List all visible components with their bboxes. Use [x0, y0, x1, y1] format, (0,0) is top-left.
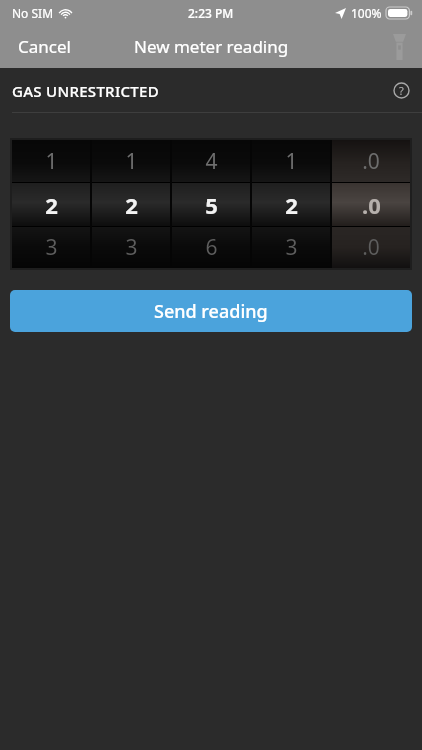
staticText: .0	[362, 190, 381, 220]
staticText: Send reading	[154, 299, 268, 324]
button[interactable]: Send reading	[10, 290, 412, 332]
button[interactable]: Cancel	[0, 27, 89, 66]
button[interactable]: 1	[12, 140, 90, 268]
staticText: 6	[205, 233, 218, 262]
staticText: 3	[285, 233, 298, 262]
staticText: 5	[205, 190, 218, 220]
staticText: .0	[362, 147, 380, 176]
staticText: 2:23 PM	[188, 5, 234, 21]
staticText: 1	[285, 147, 298, 176]
button[interactable]: .0	[332, 140, 410, 268]
staticText: No SIM	[12, 5, 54, 21]
staticText: 2	[45, 190, 58, 220]
staticText: New meter reading	[134, 35, 289, 58]
button[interactable]: 1	[252, 140, 330, 268]
staticText: 3	[45, 233, 58, 262]
staticText: 1	[125, 147, 138, 176]
staticText: 3	[125, 233, 138, 262]
staticText: GAS UNRESTRICTED	[12, 81, 159, 101]
staticText: 1	[45, 147, 58, 176]
button[interactable]: Torch	[377, 28, 422, 66]
staticText: Cancel	[18, 35, 71, 58]
staticText: 2	[125, 190, 138, 220]
button[interactable]: 4	[172, 140, 250, 268]
staticText: 2	[285, 190, 298, 220]
staticText: 4	[205, 147, 218, 176]
button[interactable]: Help	[381, 74, 422, 107]
staticText: ?	[399, 83, 404, 98]
button[interactable]: 1	[92, 140, 170, 268]
staticText: .0	[362, 233, 380, 262]
staticText: 100%	[351, 5, 382, 21]
